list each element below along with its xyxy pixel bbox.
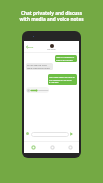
staticText: Back xyxy=(28,45,34,48)
button[interactable]: Attach xyxy=(26,132,29,135)
staticText: Hey! Is it possible to have a few words? xyxy=(56,56,75,61)
button[interactable]: This could mean this kind of the flexibi… xyxy=(49,76,76,83)
staticText: This could mean this kind of the flexibi… xyxy=(49,76,75,83)
button[interactable]: Back xyxy=(26,45,34,48)
staticText: Chat privately and discuss with media an… xyxy=(0,10,103,22)
staticText: Mia Smith xyxy=(47,48,56,50)
staticText: Oh my God! We could some submissions tod… xyxy=(27,64,50,69)
button[interactable]: Oh my God! We could some submissions tod… xyxy=(27,64,52,69)
button[interactable]: Hey! Is it possible to have a few words? xyxy=(56,56,76,61)
button[interactable] xyxy=(31,132,69,137)
button[interactable]: Chats xyxy=(24,142,43,153)
button[interactable]: Settings xyxy=(61,142,79,153)
button[interactable]: Send xyxy=(70,132,73,136)
button[interactable] xyxy=(27,87,48,93)
button[interactable]: Files xyxy=(43,142,61,153)
